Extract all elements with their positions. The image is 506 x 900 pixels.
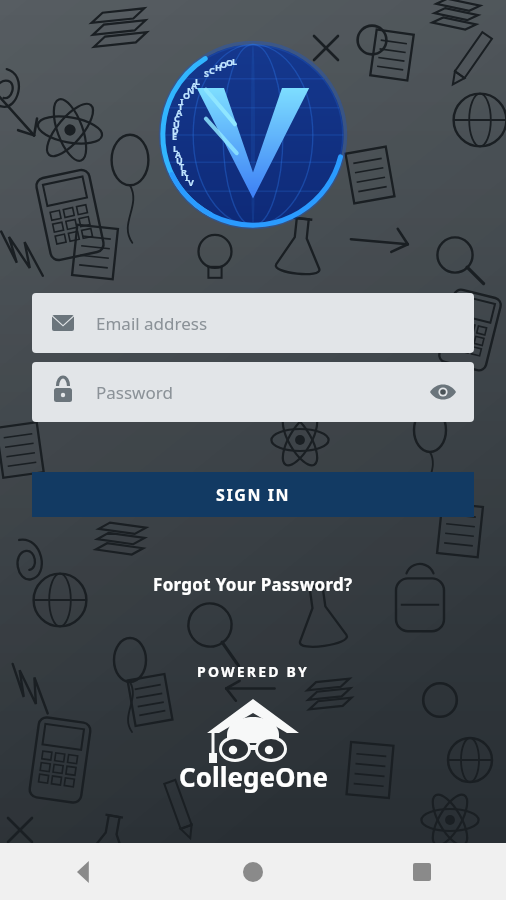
staticText: O — [220, 58, 228, 70]
button[interactable]: Forgot Your Password? — [143, 569, 363, 600]
button[interactable]: Email address — [32, 293, 474, 353]
staticText: POWERED BY — [197, 662, 309, 681]
button[interactable]: Recent apps — [337, 843, 506, 900]
button[interactable]: Show password — [426, 375, 460, 409]
staticText: L — [195, 75, 201, 87]
staticText: Forgot Your Password? — [153, 573, 353, 596]
staticText: N — [187, 84, 195, 96]
staticText: A — [191, 79, 198, 91]
other: Virtual Educational School logo — [161, 43, 345, 227]
button[interactable]: Password — [32, 362, 474, 422]
staticText: D — [172, 124, 179, 136]
staticText: T — [179, 160, 185, 172]
staticText: A — [175, 148, 182, 160]
staticText: I — [185, 171, 189, 183]
staticText: L — [232, 55, 238, 67]
staticText: I — [180, 95, 184, 107]
other: CollegeOne — [203, 697, 303, 757]
button[interactable]: Home — [168, 843, 337, 900]
staticText: SIGN IN — [216, 484, 291, 506]
staticText: Email address — [96, 312, 208, 335]
staticText: Password — [96, 381, 173, 404]
staticText: O — [226, 56, 234, 68]
staticText: L — [173, 142, 179, 154]
staticText: C — [174, 112, 180, 124]
staticText: U — [176, 154, 183, 166]
button[interactable]: SIGN IN — [32, 472, 474, 517]
staticText: H — [215, 61, 222, 73]
staticText: S — [204, 67, 209, 79]
staticText: CollegeOne — [179, 759, 328, 794]
staticText: A — [176, 106, 183, 118]
staticText: T — [178, 100, 184, 112]
staticText: C — [209, 64, 215, 76]
button[interactable]: Back — [0, 843, 168, 900]
staticText: E — [172, 130, 178, 142]
staticText: R — [181, 166, 187, 178]
staticText: O — [183, 89, 191, 101]
staticText: U — [173, 118, 180, 130]
staticText: V — [188, 176, 194, 188]
